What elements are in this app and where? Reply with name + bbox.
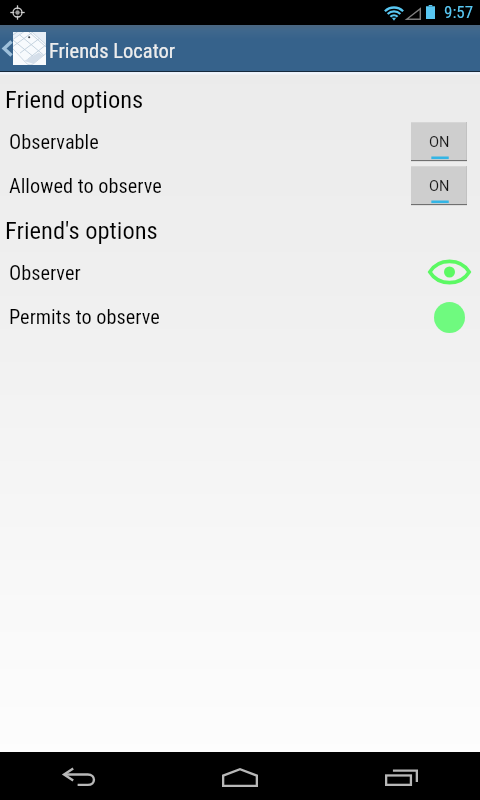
- button[interactable]: Observable: [0, 120, 480, 164]
- staticText: Friend's options: [5, 216, 158, 245]
- staticText: Observable: [9, 130, 411, 154]
- other: Location: [10, 5, 25, 20]
- button[interactable]: Home: [200, 752, 280, 800]
- staticText: Friends Locator: [49, 39, 176, 63]
- button[interactable]: Friends Locator: [0, 25, 480, 72]
- button[interactable]: Toggle on: [411, 166, 467, 206]
- staticText: 9:57: [444, 2, 474, 22]
- button[interactable]: Observer: [425, 253, 473, 293]
- button[interactable]: Toggle on: [411, 122, 467, 162]
- button[interactable]: Allowed to observe: [0, 164, 480, 208]
- button[interactable]: Permits to observe: [0, 295, 480, 339]
- staticText: Observer: [9, 261, 425, 285]
- staticText: Allowed to observe: [9, 174, 411, 198]
- staticText: ON: [429, 133, 450, 150]
- staticText: Permits to observe: [9, 305, 425, 329]
- button[interactable]: Observer: [0, 251, 480, 295]
- button[interactable]: Back: [40, 752, 120, 800]
- button[interactable]: Recents: [361, 752, 441, 800]
- staticText: ON: [429, 177, 450, 194]
- staticText: Friend options: [5, 85, 144, 114]
- button[interactable]: Permits to observe: [425, 297, 473, 337]
